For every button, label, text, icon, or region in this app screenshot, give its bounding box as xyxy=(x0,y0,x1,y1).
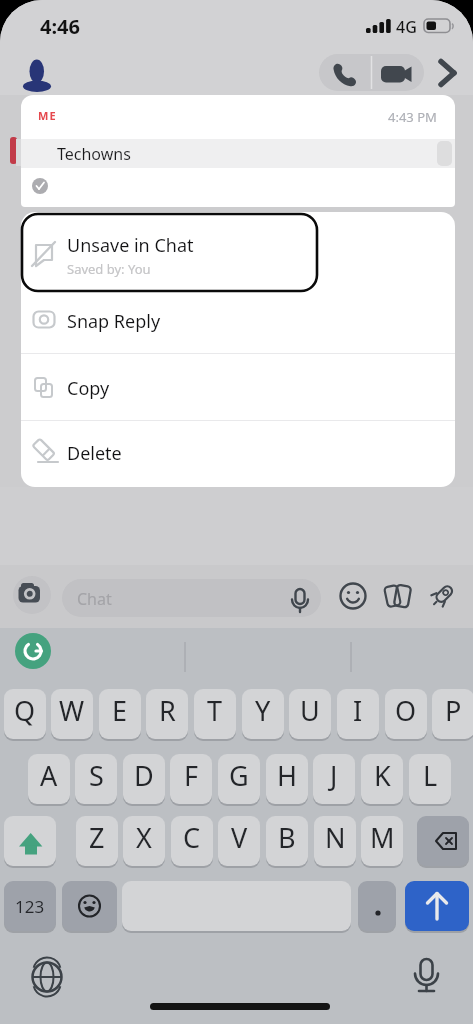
staticText: H xyxy=(277,757,298,794)
staticText: Q xyxy=(14,692,36,729)
staticText: Y xyxy=(255,692,271,729)
staticText: 4G xyxy=(396,16,417,38)
staticText: L xyxy=(423,757,438,794)
staticText: R xyxy=(159,692,176,729)
staticText: N xyxy=(325,819,346,856)
staticText: Snap Reply xyxy=(67,309,161,334)
staticText: V xyxy=(231,819,248,856)
staticText: 4:43 PM xyxy=(388,108,437,124)
staticText: Chat xyxy=(77,588,112,610)
staticText: 4:46 xyxy=(40,13,80,40)
staticText: G xyxy=(229,757,249,794)
staticText: 123 xyxy=(15,895,45,918)
staticText: Unsave in Chat xyxy=(67,233,194,258)
staticText: X xyxy=(136,819,152,856)
staticText: J xyxy=(330,757,338,794)
staticText: Delete xyxy=(67,441,122,466)
staticText: B xyxy=(278,819,296,856)
staticText: E xyxy=(112,692,128,729)
staticText: Copy xyxy=(67,376,110,401)
staticText: F xyxy=(184,757,199,794)
staticText: I xyxy=(353,692,363,729)
staticText: M xyxy=(370,819,395,856)
staticText: A xyxy=(40,757,58,794)
staticText: Saved by: You xyxy=(67,260,151,278)
staticText: O xyxy=(395,692,417,729)
staticText: C xyxy=(183,819,201,856)
staticText: Techowns xyxy=(57,143,131,165)
staticText: K xyxy=(374,757,391,794)
staticText: Z xyxy=(89,819,105,856)
staticText: W xyxy=(59,692,85,729)
staticText: U xyxy=(300,692,320,729)
staticText: T xyxy=(207,692,223,729)
staticText: S xyxy=(89,757,104,794)
staticText: D xyxy=(134,757,154,794)
staticText: P xyxy=(445,692,462,729)
staticText: ME xyxy=(38,108,57,123)
